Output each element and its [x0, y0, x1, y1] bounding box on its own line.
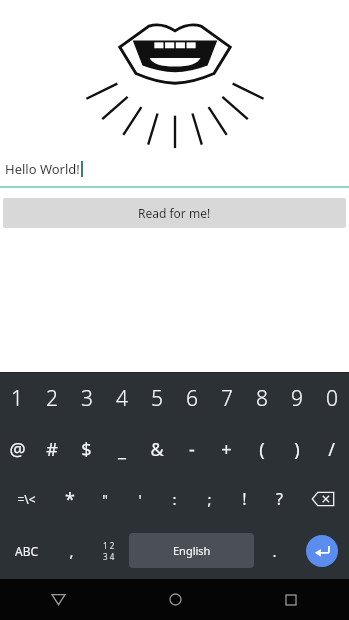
- button[interactable]: =\<: [0, 474, 52, 524]
- staticText: &: [150, 437, 164, 462]
- button[interactable]: 3: [69, 372, 104, 424]
- button[interactable]: Enter: [295, 524, 349, 577]
- button[interactable]: 4: [104, 372, 139, 424]
- staticText: :: [172, 489, 177, 509]
- staticText: ): [294, 437, 300, 462]
- button[interactable]: Recents: [233, 579, 349, 620]
- button[interactable]: Home: [117, 579, 233, 620]
- button[interactable]: &: [139, 424, 174, 474]
- button[interactable]: 6: [174, 372, 209, 424]
- staticText: =\<: [17, 491, 36, 507]
- staticText: 5: [151, 384, 163, 413]
- button[interactable]: -: [174, 424, 209, 474]
- staticText: 1: [11, 384, 23, 413]
- staticText: ,: [69, 541, 74, 561]
- staticText: *: [65, 487, 75, 512]
- staticText: +: [221, 437, 232, 462]
- button[interactable]: Back: [0, 579, 117, 620]
- staticText: @: [9, 437, 26, 462]
- button[interactable]: ?: [262, 474, 297, 524]
- button[interactable]: ": [87, 474, 122, 524]
- staticText: ': [138, 490, 142, 509]
- button[interactable]: ,: [54, 524, 88, 577]
- staticText: 9: [291, 384, 303, 413]
- staticText: 3: [81, 384, 93, 413]
- button[interactable]: 5: [139, 372, 174, 424]
- button[interactable]: 9: [279, 372, 314, 424]
- staticText: ?: [276, 488, 283, 510]
- button[interactable]: _: [104, 424, 139, 474]
- button[interactable]: 8: [244, 372, 279, 424]
- button[interactable]: +: [209, 424, 244, 474]
- staticText: English: [173, 543, 211, 558]
- button[interactable]: Backspace: [297, 474, 349, 524]
- button[interactable]: Numbers: [88, 524, 129, 577]
- staticText: Hello World!: [5, 160, 80, 178]
- staticText: 7: [221, 384, 233, 413]
- staticText: 3 4: [103, 551, 115, 562]
- button[interactable]: *: [52, 474, 87, 524]
- staticText: 4: [116, 384, 128, 413]
- button[interactable]: 7: [209, 372, 244, 424]
- button[interactable]: Hello World!: [0, 156, 349, 182]
- staticText: -: [189, 437, 195, 462]
- button[interactable]: .: [254, 524, 295, 577]
- button[interactable]: :: [157, 474, 192, 524]
- button[interactable]: Read for me!: [3, 198, 346, 228]
- staticText: Read for me!: [138, 205, 211, 221]
- button[interactable]: ABC: [0, 524, 54, 577]
- button[interactable]: #: [34, 424, 69, 474]
- button[interactable]: $: [69, 424, 104, 474]
- staticText: 8: [256, 384, 268, 413]
- button[interactable]: ): [279, 424, 314, 474]
- button[interactable]: 1: [0, 372, 34, 424]
- staticText: .: [272, 541, 277, 561]
- staticText: 1 2: [103, 540, 115, 551]
- button[interactable]: ': [122, 474, 157, 524]
- button[interactable]: (: [244, 424, 279, 474]
- button[interactable]: @: [0, 424, 34, 474]
- button[interactable]: 2: [34, 372, 69, 424]
- button[interactable]: 0: [314, 372, 349, 424]
- button[interactable]: /: [314, 424, 349, 474]
- staticText: !: [242, 488, 247, 510]
- staticText: ;: [207, 489, 212, 509]
- staticText: 2: [46, 384, 58, 413]
- staticText: ": [102, 490, 108, 509]
- staticText: 0: [326, 384, 338, 413]
- other: Speak: [110, 12, 240, 120]
- staticText: $: [81, 437, 92, 462]
- staticText: _: [118, 437, 126, 462]
- button[interactable]: !: [227, 474, 262, 524]
- button[interactable]: ;: [192, 474, 227, 524]
- staticText: /: [328, 437, 335, 462]
- staticText: 6: [186, 384, 198, 413]
- staticText: #: [46, 437, 58, 462]
- staticText: ABC: [15, 543, 39, 559]
- button[interactable]: English: [129, 533, 254, 568]
- staticText: (: [259, 437, 265, 462]
